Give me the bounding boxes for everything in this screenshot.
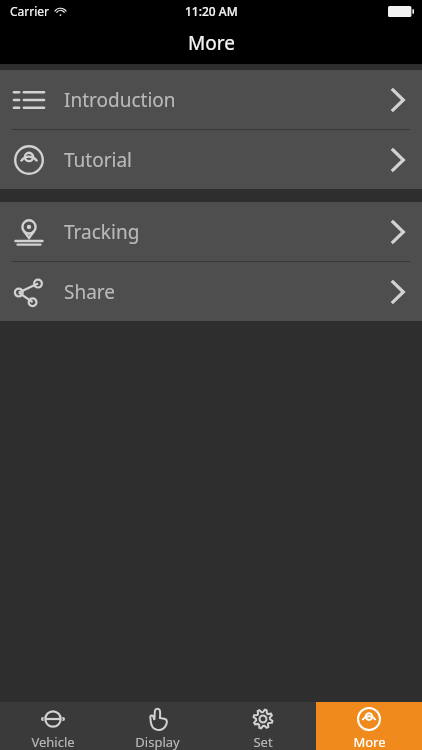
staticText: Carrier [10, 3, 50, 19]
button[interactable]: Display [105, 702, 210, 750]
staticText: Tracking [64, 219, 140, 245]
button[interactable]: Vehicle [0, 702, 105, 750]
button[interactable]: Introduction [0, 70, 422, 129]
staticText: More [188, 30, 235, 56]
staticText: More [353, 733, 386, 750]
staticText: Share [64, 279, 116, 305]
staticText: Introduction [64, 87, 176, 113]
staticText: Display [135, 733, 180, 750]
button[interactable]: Tutorial [0, 130, 422, 189]
button[interactable]: Share [0, 262, 422, 321]
staticText: Tutorial [64, 147, 133, 173]
staticText: Vehicle [31, 733, 75, 750]
staticText: 11:20 AM [185, 3, 238, 19]
button[interactable]: Tracking [0, 202, 422, 261]
button[interactable]: More [316, 702, 422, 750]
staticText: Set [253, 733, 273, 750]
button[interactable]: Set [210, 702, 316, 750]
